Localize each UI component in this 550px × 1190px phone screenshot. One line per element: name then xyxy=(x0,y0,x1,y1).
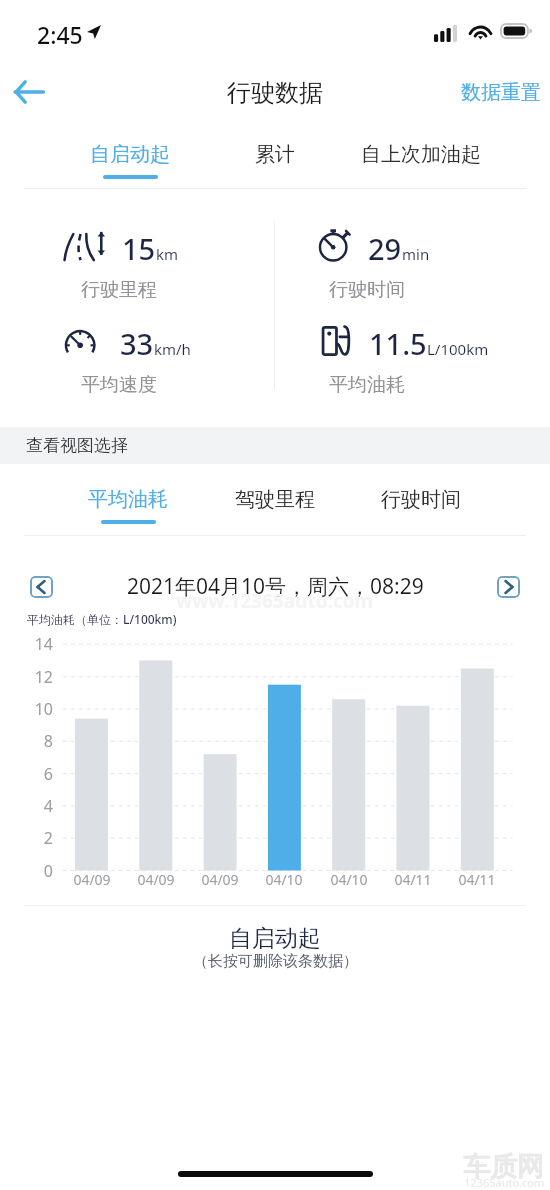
button[interactable]: 行驶时间 xyxy=(366,487,476,531)
staticText: 04/09 xyxy=(73,870,111,889)
staticText: www.12365auto.com xyxy=(176,588,374,614)
staticText: 2 xyxy=(43,827,53,849)
staticText: 04/11 xyxy=(458,870,496,889)
staticText: 04/11 xyxy=(394,870,432,889)
staticText: （长按可删除该条数据） xyxy=(193,952,358,971)
staticText: 自启动起 xyxy=(229,924,321,953)
button[interactable]: Next day xyxy=(497,576,520,598)
staticText: 自启动起 xyxy=(90,142,170,167)
staticText: 12 xyxy=(34,666,53,688)
staticText: min xyxy=(402,244,430,264)
staticText: 自上次加油起 xyxy=(361,142,481,167)
staticText: 04/10 xyxy=(265,870,303,889)
staticText: km xyxy=(156,244,179,264)
button[interactable]: Previous day xyxy=(30,576,53,598)
staticText: 15 xyxy=(122,229,156,268)
staticText: 14 xyxy=(34,633,53,655)
staticText: 查看视图选择 xyxy=(26,435,128,456)
staticText: 行驶里程 xyxy=(81,278,157,302)
button[interactable]: 数据重置 xyxy=(452,68,550,116)
staticText: 04/09 xyxy=(137,870,175,889)
staticText: 累计 xyxy=(255,142,295,167)
button[interactable]: 平均油耗 xyxy=(73,487,183,531)
staticText: 数据重置 xyxy=(461,80,541,105)
staticText: 0 xyxy=(43,860,53,882)
staticText: 行驶时间 xyxy=(329,278,405,302)
staticText: 6 xyxy=(43,763,53,785)
staticText: 行驶数据 xyxy=(227,78,323,108)
staticText: L/100km xyxy=(427,339,489,359)
staticText: km/h xyxy=(154,339,191,359)
staticText: 33 xyxy=(120,324,154,363)
button[interactable]: 自上次加油起 xyxy=(346,142,496,186)
staticText: 12365auto.com xyxy=(464,1175,545,1190)
staticText: 11.5 xyxy=(369,324,427,363)
staticText: 平均油耗（单位：L/100km) xyxy=(27,611,177,627)
button[interactable]: Back xyxy=(6,68,54,116)
staticText: 2021年04月10号，周六，08:29 xyxy=(127,572,424,601)
button[interactable]: 驾驶里程 xyxy=(220,487,330,531)
staticText: 车质网 xyxy=(463,1150,544,1184)
staticText: 行驶时间 xyxy=(381,487,461,512)
staticText: 平均油耗 xyxy=(329,373,405,397)
staticText: 10 xyxy=(34,698,53,720)
staticText: 29 xyxy=(368,229,402,268)
button[interactable]: 累计 xyxy=(220,142,330,186)
staticText: 2:45 xyxy=(37,19,83,50)
staticText: 04/09 xyxy=(201,870,239,889)
staticText: 8 xyxy=(43,730,53,752)
staticText: 驾驶里程 xyxy=(235,487,315,512)
button[interactable]: 自启动起 xyxy=(75,142,185,186)
staticText: 平均油耗 xyxy=(88,487,168,512)
staticText: 4 xyxy=(43,795,53,817)
staticText: 平均速度 xyxy=(81,373,157,397)
staticText: 04/10 xyxy=(330,870,368,889)
